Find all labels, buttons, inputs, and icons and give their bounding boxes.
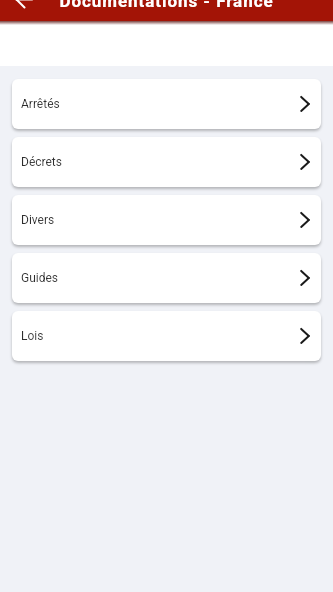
button[interactable]: Divers (12, 195, 321, 245)
staticText: Lois (21, 329, 44, 343)
staticText: Divers (21, 213, 55, 227)
button[interactable]: Lois (12, 311, 321, 361)
staticText: Décrets (21, 155, 62, 169)
button[interactable]: Arrêtés (12, 79, 321, 129)
button[interactable]: Décrets (12, 137, 321, 187)
button[interactable]: Guides (12, 253, 321, 303)
staticText: Documentations - France (59, 0, 274, 11)
button[interactable]: Back (7, 0, 39, 15)
staticText: Arrêtés (21, 97, 60, 111)
staticText: Guides (21, 271, 59, 285)
